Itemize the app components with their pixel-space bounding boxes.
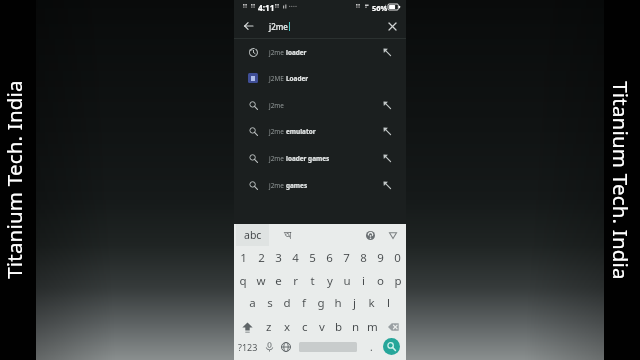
button[interactable]: Voice input xyxy=(261,335,277,358)
staticText: 9 xyxy=(377,250,384,266)
button[interactable]: abc xyxy=(236,224,269,246)
button[interactable]: Help xyxy=(362,227,378,243)
button[interactable]: Use this suggestion xyxy=(380,124,394,138)
button[interactable]: Change keyboard language xyxy=(278,335,294,358)
button[interactable]: Use this suggestion xyxy=(380,98,394,112)
button[interactable]: j2me xyxy=(234,92,406,118)
button[interactable]: b xyxy=(330,316,347,338)
button[interactable]: Search xyxy=(379,335,404,358)
button[interactable]: j xyxy=(346,292,363,314)
button[interactable]: 5 xyxy=(304,247,321,269)
staticText: loader games xyxy=(286,154,330,163)
button[interactable]: r xyxy=(287,270,304,292)
button[interactable]: x xyxy=(278,316,296,338)
button[interactable]: Use this suggestion xyxy=(380,151,394,165)
button[interactable]: 9 xyxy=(372,247,389,269)
button[interactable]: Shift xyxy=(234,316,260,338)
button[interactable]: 6 xyxy=(321,247,338,269)
staticText: p xyxy=(394,273,402,289)
staticText: q xyxy=(239,273,247,289)
button[interactable]: j2me xyxy=(234,145,406,171)
button[interactable]: o xyxy=(372,270,389,292)
button[interactable]: l xyxy=(380,292,397,314)
staticText: a xyxy=(249,295,256,311)
staticText: 7 xyxy=(343,250,350,266)
staticText: loader xyxy=(286,48,307,57)
staticText: j2me xyxy=(269,127,286,136)
button[interactable]: More keyboard options xyxy=(385,227,401,243)
button[interactable]: Clear search xyxy=(384,18,400,34)
button[interactable]: J2ME xyxy=(234,65,406,91)
button[interactable]: y xyxy=(321,270,338,292)
button[interactable]: Backspace xyxy=(381,316,406,338)
button[interactable]: e xyxy=(270,270,287,292)
button[interactable]: q xyxy=(234,270,252,292)
button[interactable]: v xyxy=(313,316,330,338)
button[interactable]: ?123 xyxy=(237,335,259,358)
button[interactable]: h xyxy=(329,292,346,314)
staticText: v xyxy=(319,319,325,335)
button[interactable]: 2 xyxy=(252,247,270,269)
button[interactable]: 4 xyxy=(287,247,304,269)
button[interactable]: Back xyxy=(240,18,256,34)
button[interactable]: w xyxy=(252,270,270,292)
button[interactable]: p xyxy=(389,270,406,292)
button[interactable]: i xyxy=(355,270,372,292)
button[interactable]: d xyxy=(278,292,295,314)
button[interactable]: u xyxy=(338,270,355,292)
staticText: w xyxy=(256,273,266,289)
button[interactable]: j2me xyxy=(234,118,406,144)
button[interactable]: c xyxy=(296,316,313,338)
staticText: x xyxy=(284,319,291,335)
staticText: l xyxy=(387,295,390,311)
button[interactable]: Use this suggestion xyxy=(380,178,394,192)
staticText: 4:11 xyxy=(258,2,275,13)
staticText: 0 xyxy=(394,250,401,266)
button[interactable]: s xyxy=(261,292,278,314)
staticText: e xyxy=(275,273,282,289)
button[interactable]: z xyxy=(260,316,278,338)
staticText: ?123 xyxy=(238,341,258,353)
staticText: games xyxy=(286,181,308,190)
staticText: j2me xyxy=(269,101,284,110)
button[interactable]: Bengali keyboard layout xyxy=(274,224,302,246)
staticText: h xyxy=(334,295,342,311)
button[interactable]: j2me xyxy=(234,39,406,65)
staticText: t xyxy=(310,273,315,289)
staticText: j2me xyxy=(269,48,286,57)
staticText: d xyxy=(283,295,291,311)
staticText: s xyxy=(267,295,273,311)
staticText: j2me xyxy=(269,154,286,163)
button[interactable]: k xyxy=(363,292,380,314)
staticText: y xyxy=(327,273,333,289)
button[interactable]: f xyxy=(295,292,312,314)
button[interactable]: 3 xyxy=(270,247,287,269)
button[interactable]: n xyxy=(347,316,364,338)
staticText: k xyxy=(368,295,375,311)
staticText: b xyxy=(335,319,343,335)
button[interactable]: 1 xyxy=(234,247,252,269)
button[interactable]: Use this suggestion xyxy=(380,45,394,59)
button[interactable]: t xyxy=(304,270,321,292)
button[interactable]: j2me xyxy=(234,172,406,198)
button[interactable]: 8 xyxy=(355,247,372,269)
button[interactable]: Space xyxy=(299,335,357,358)
staticText: Titanium Tech. India xyxy=(611,81,635,280)
staticText: i xyxy=(362,273,365,289)
staticText: j xyxy=(353,295,356,311)
button[interactable]: m xyxy=(364,316,381,338)
staticText: J2ME xyxy=(269,74,286,83)
staticText: n xyxy=(352,319,360,335)
button[interactable]: 7 xyxy=(338,247,355,269)
staticText: 8 xyxy=(360,250,367,266)
staticText: o xyxy=(377,273,384,289)
staticText: 56% xyxy=(372,3,388,13)
staticText: j2me xyxy=(269,181,286,190)
button[interactable]: a xyxy=(243,292,261,314)
staticText: Titanium Tech. India xyxy=(0,80,24,279)
button[interactable]: 0 xyxy=(389,247,406,269)
button[interactable]: g xyxy=(312,292,329,314)
staticText: 1 xyxy=(240,250,247,266)
button[interactable]: . xyxy=(364,335,378,358)
staticText: f xyxy=(302,295,306,311)
